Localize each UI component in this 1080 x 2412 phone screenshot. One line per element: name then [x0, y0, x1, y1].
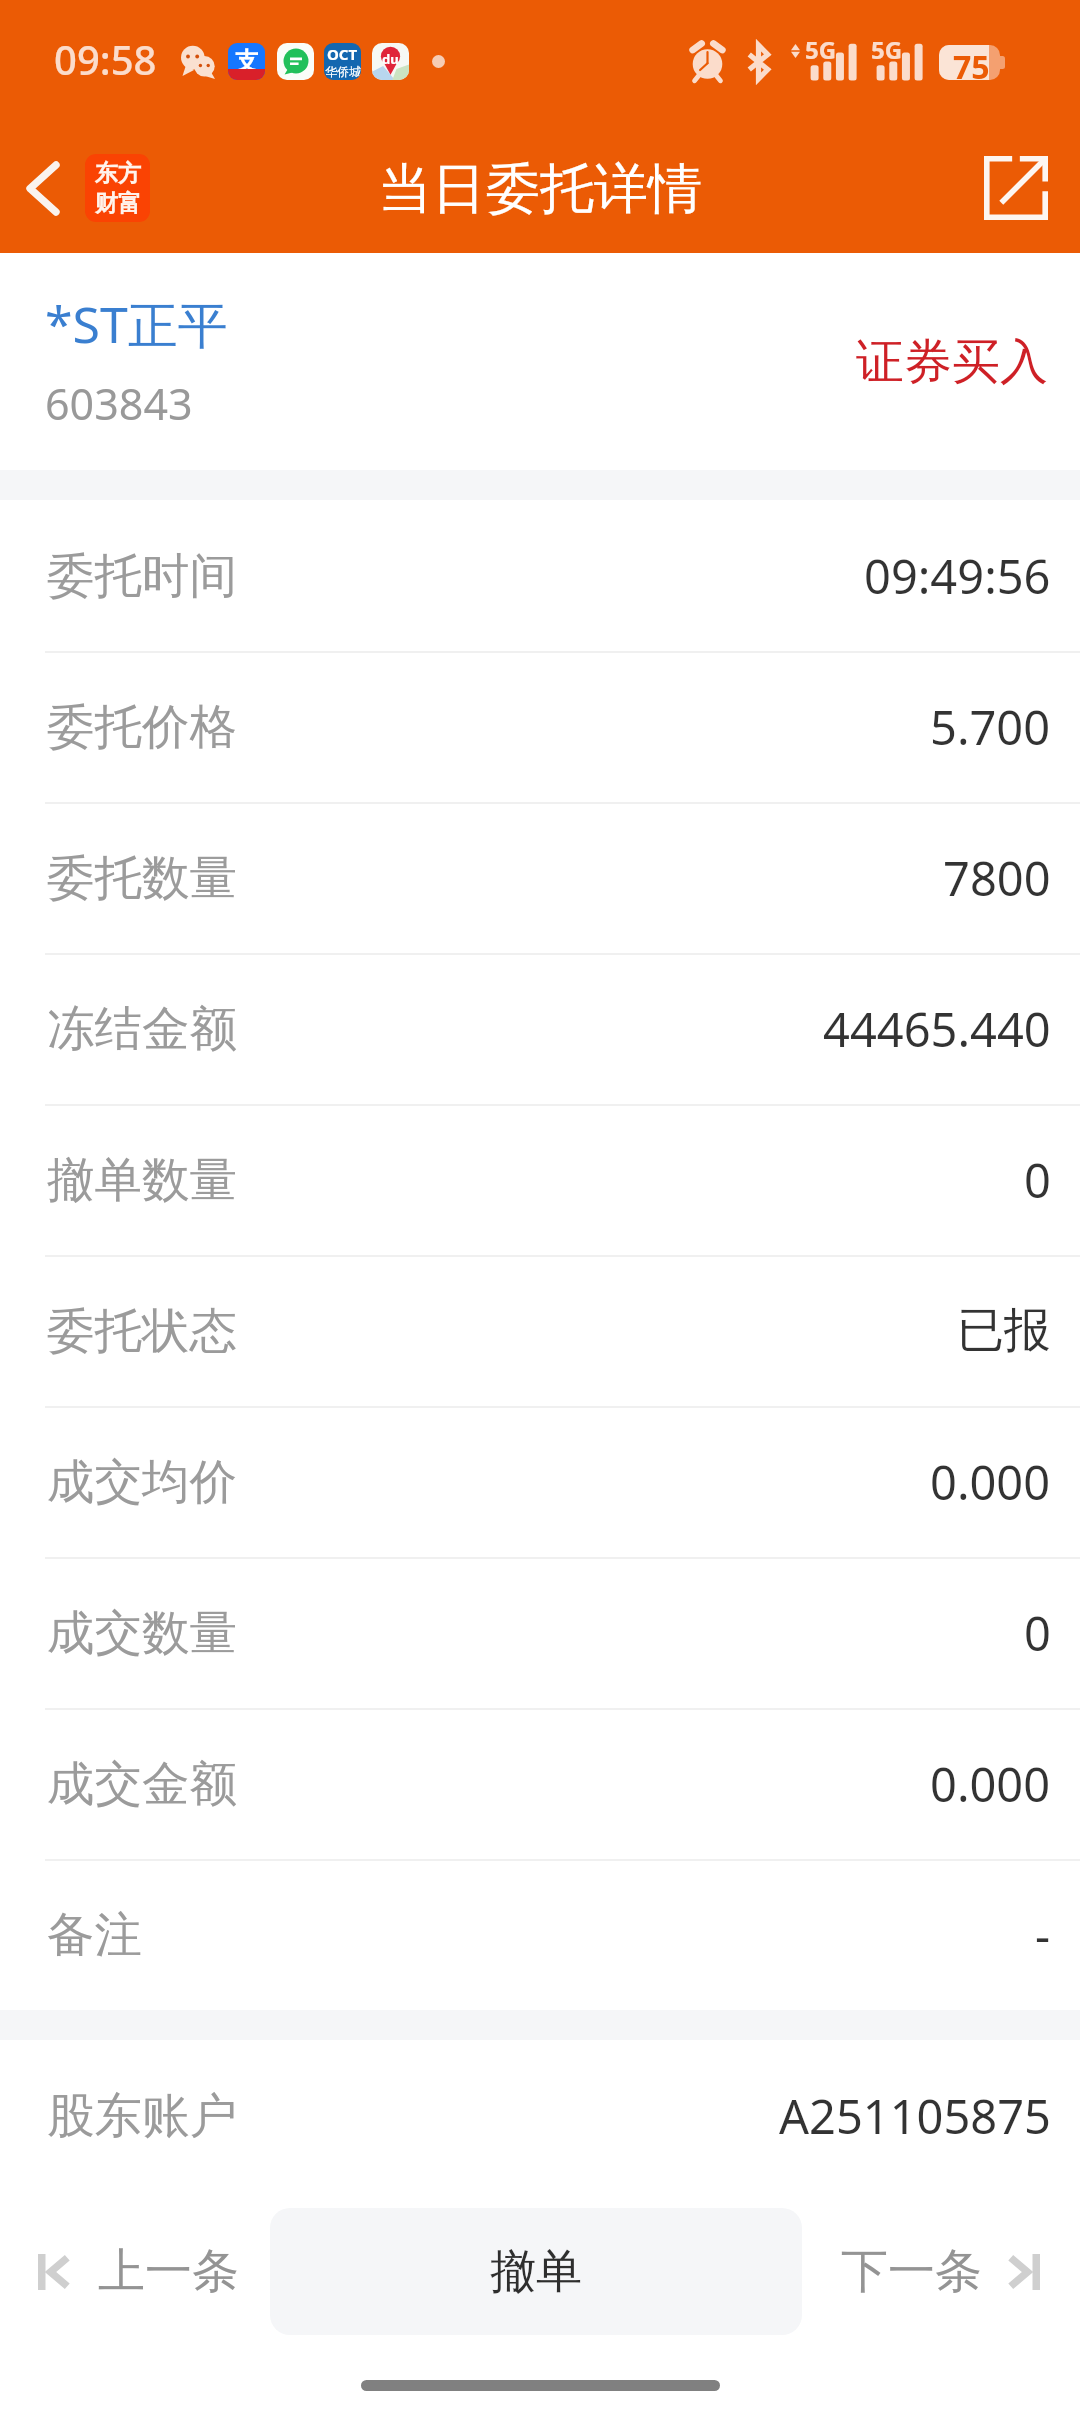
staticText: A251105875 [779, 2084, 1051, 2148]
button[interactable]: 冻结金额 [0, 953, 1080, 1104]
staticText: - [1035, 1903, 1051, 1967]
staticText: 当日委托详情 [378, 155, 702, 223]
button[interactable]: 上一条 [0, 2208, 270, 2335]
button[interactable]: 成交均价 [0, 1406, 1080, 1557]
staticText: 0 [1024, 1148, 1051, 1212]
staticText: 撤单数量 [47, 1150, 237, 1210]
staticText: 华侨城 [325, 64, 361, 79]
button[interactable]: 委托状态 [0, 1255, 1080, 1406]
staticText: 委托状态 [47, 1301, 237, 1361]
button[interactable]: Share [952, 124, 1080, 252]
button[interactable]: 撤单数量 [0, 1104, 1080, 1255]
staticText: 5G [871, 33, 903, 66]
staticText: du [382, 50, 399, 68]
button[interactable]: 委托数量 [0, 802, 1080, 953]
staticText: 成交均价 [47, 1452, 237, 1512]
staticText: 备注 [47, 1905, 142, 1965]
button[interactable]: 委托价格 [0, 651, 1080, 802]
staticText: 成交金额 [47, 1754, 237, 1814]
staticText: 5.700 [930, 695, 1051, 759]
staticText: 上一条 [98, 2242, 239, 2301]
staticText: 冻结金额 [47, 999, 237, 1059]
staticText: 东方 财富 [95, 159, 141, 218]
button[interactable]: Back [4, 149, 82, 227]
staticText: 09:49:56 [864, 544, 1051, 608]
staticText: 75 [953, 45, 990, 79]
button[interactable]: 委托时间 [0, 500, 1080, 651]
staticText: 委托时间 [47, 546, 237, 606]
staticText: 撤单 [490, 2243, 582, 2301]
staticText: 0.000 [930, 1752, 1051, 1816]
button[interactable]: 成交金额 [0, 1708, 1080, 1859]
staticText: 委托数量 [47, 848, 237, 908]
staticText: 支 [235, 46, 259, 76]
button[interactable]: 成交数量 [0, 1557, 1080, 1708]
staticText: 已报 [957, 1301, 1051, 1360]
staticText: 委托价格 [47, 697, 237, 757]
staticText: 0.000 [930, 1450, 1051, 1514]
staticText: *ST正平 [45, 290, 228, 358]
staticText: 下一条 [841, 2242, 982, 2301]
staticText: 0 [1024, 1601, 1051, 1665]
button[interactable]: 下一条 [802, 2208, 1080, 2335]
button[interactable]: 股东账户 [0, 2040, 1080, 2191]
staticText: 09:58 [54, 32, 157, 86]
button[interactable]: 备注 [0, 1859, 1080, 2010]
staticText: 证券买入 [856, 332, 1048, 392]
staticText: 44465.440 [823, 997, 1051, 1061]
staticText: OCT [327, 44, 358, 64]
button[interactable]: 撤单 [270, 2208, 802, 2335]
staticText: 5G [805, 33, 837, 66]
staticText: 股东账户 [47, 2086, 237, 2146]
staticText: 成交数量 [47, 1603, 237, 1663]
staticText: 603843 [45, 374, 193, 433]
staticText: 7800 [943, 846, 1051, 910]
